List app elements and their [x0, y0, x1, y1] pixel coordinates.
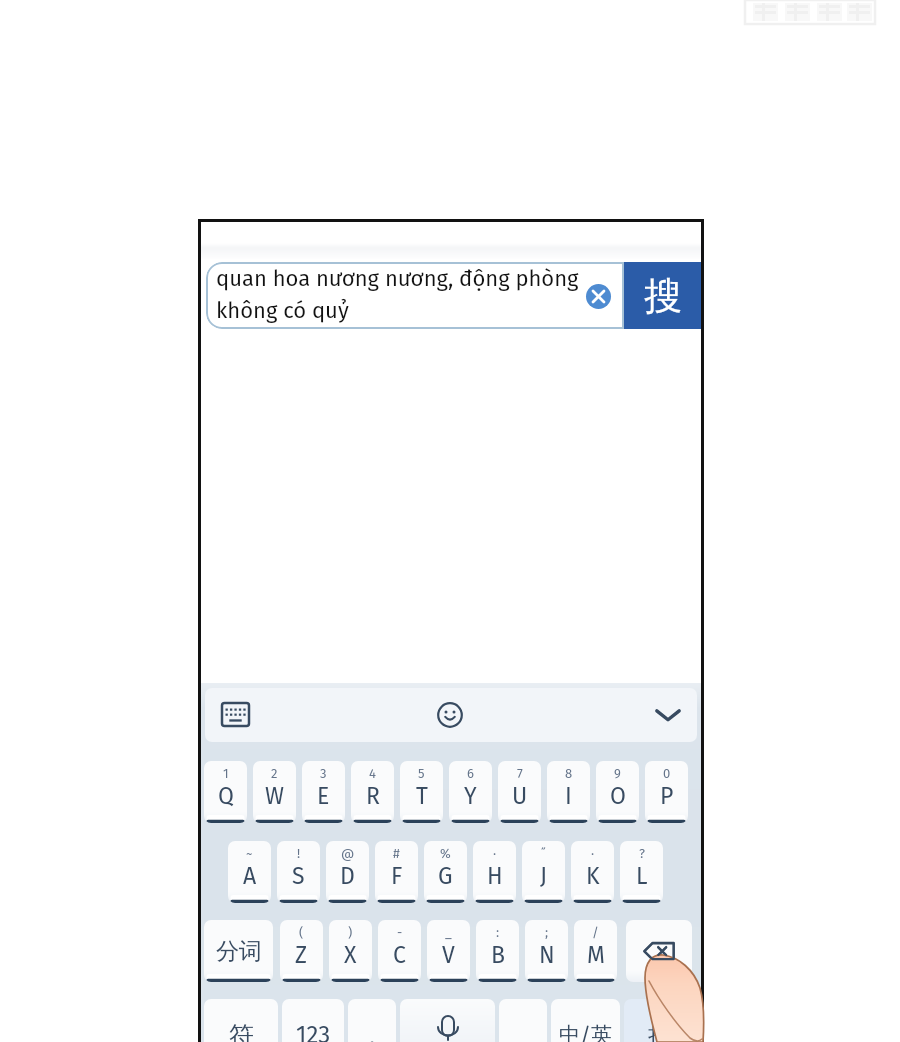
- staticText: Z: [295, 941, 308, 969]
- staticText: J: [540, 862, 548, 890]
- staticText: -: [397, 925, 403, 941]
- button[interactable]: ·: [571, 841, 614, 903]
- staticText: F: [391, 862, 403, 890]
- staticText: N: [539, 941, 555, 969]
- staticText: S: [292, 862, 305, 890]
- staticText: U: [512, 782, 528, 810]
- button[interactable]: :: [476, 920, 519, 982]
- staticText: Q: [218, 782, 234, 810]
- staticText: G: [438, 862, 453, 890]
- staticText: 3: [320, 766, 327, 782]
- staticText: X: [344, 941, 357, 969]
- staticText: 0: [663, 766, 671, 782]
- button[interactable]: Hide keyboard: [647, 694, 689, 736]
- button[interactable]: Clear text: [581, 279, 615, 313]
- staticText: @: [341, 846, 355, 862]
- staticText: 7: [517, 766, 523, 782]
- staticText: 2: [271, 766, 278, 782]
- staticText: O: [610, 782, 626, 810]
- staticText: 中/英: [559, 1022, 612, 1042]
- button[interactable]: 3: [302, 761, 345, 823]
- button[interactable]: 5: [400, 761, 443, 823]
- staticText: 8: [565, 766, 573, 782]
- button[interactable]: 7: [498, 761, 541, 823]
- button[interactable]: 9: [596, 761, 639, 823]
- button[interactable]: 符: [204, 999, 278, 1042]
- button[interactable]: (: [280, 920, 323, 982]
- staticText: 9: [614, 766, 621, 782]
- button[interactable]: ): [329, 920, 372, 982]
- button[interactable]: -: [378, 920, 421, 982]
- staticText: B: [491, 941, 505, 969]
- staticText: 123: [296, 1021, 331, 1042]
- staticText: 搜: [648, 1020, 673, 1042]
- staticText: ·: [591, 846, 595, 862]
- button[interactable]: #: [375, 841, 418, 903]
- button[interactable]: ~: [228, 841, 271, 903]
- button[interactable]: 4: [351, 761, 394, 823]
- staticText: H: [487, 862, 503, 890]
- staticText: ·: [493, 846, 497, 862]
- staticText: (: [299, 925, 304, 941]
- button[interactable]: ·: [473, 841, 516, 903]
- staticText: 符: [229, 1020, 254, 1042]
- staticText: ,: [369, 1021, 376, 1042]
- staticText: !: [297, 846, 301, 862]
- staticText: W: [265, 782, 284, 810]
- button[interactable]: Keyboard layout: [214, 693, 256, 735]
- staticText: A: [243, 862, 257, 890]
- staticText: C: [393, 941, 406, 969]
- button[interactable]: 8: [547, 761, 590, 823]
- staticText: K: [586, 862, 600, 890]
- button[interactable]: 123: [282, 999, 344, 1042]
- button[interactable]: 分词: [204, 920, 273, 982]
- staticText: :: [496, 925, 500, 941]
- button[interactable]: 搜: [624, 262, 701, 329]
- staticText: E: [317, 782, 330, 810]
- staticText: _: [445, 925, 452, 941]
- button[interactable]: !: [277, 841, 320, 903]
- staticText: ?: [639, 846, 645, 862]
- button[interactable]: Backspace: [626, 920, 692, 982]
- staticText: ˝: [541, 846, 546, 862]
- staticText: quan hoa nương nương, động phòng không c…: [216, 265, 590, 324]
- button[interactable]: quan hoa nương nương, động phòng không c…: [206, 262, 624, 329]
- staticText: V: [442, 941, 455, 969]
- staticText: ): [348, 925, 353, 941]
- staticText: D: [340, 862, 355, 890]
- staticText: Y: [464, 782, 477, 810]
- button[interactable]: Emoji: [429, 694, 471, 736]
- button[interactable]: 0: [645, 761, 688, 823]
- staticText: R: [366, 782, 380, 810]
- button[interactable]: ;: [525, 920, 568, 982]
- button[interactable]: 2: [253, 761, 296, 823]
- staticText: L: [636, 862, 648, 890]
- staticText: 5: [418, 766, 425, 782]
- staticText: #: [393, 846, 400, 862]
- staticText: I: [565, 782, 572, 810]
- staticText: 4: [369, 766, 376, 782]
- staticText: M: [587, 941, 605, 969]
- button[interactable]: Voice input: [400, 999, 495, 1042]
- button[interactable]: 6: [449, 761, 492, 823]
- button[interactable]: /: [574, 920, 617, 982]
- button[interactable]: ,: [348, 999, 396, 1042]
- button[interactable]: ?: [620, 841, 663, 903]
- staticText: ;: [545, 925, 549, 941]
- staticText: P: [660, 782, 674, 810]
- button[interactable]: 中/英: [551, 999, 620, 1042]
- button[interactable]: %: [424, 841, 467, 903]
- staticText: ~: [246, 846, 253, 862]
- staticText: T: [416, 782, 428, 810]
- staticText: /: [592, 925, 599, 941]
- button[interactable]: @: [326, 841, 369, 903]
- staticText: 分词: [216, 937, 262, 966]
- staticText: 6: [467, 766, 474, 782]
- button[interactable]: ˝: [522, 841, 565, 903]
- button[interactable]: 搜: [624, 999, 696, 1042]
- button[interactable]: _: [427, 920, 470, 982]
- button[interactable]: 1: [204, 761, 247, 823]
- staticText: 搜: [644, 272, 682, 320]
